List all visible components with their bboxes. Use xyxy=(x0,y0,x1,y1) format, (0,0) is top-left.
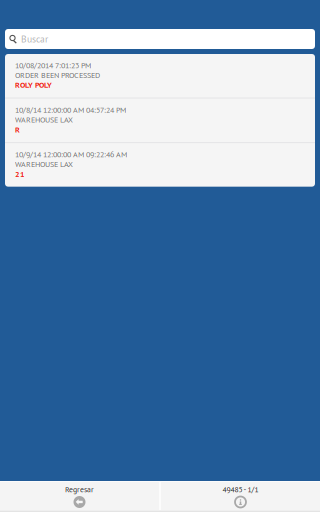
staticText: WAREHOUSE LAX xyxy=(15,114,73,125)
staticText: 49485 - 1/1 xyxy=(222,484,258,494)
button[interactable]: 10/08/2014 7:01:23 PM xyxy=(5,54,315,98)
staticText: 21 xyxy=(15,169,25,179)
staticText: Regresar xyxy=(65,484,94,494)
staticText: 10/8/14 12:00:00 AM 04:57:24 PM xyxy=(15,105,126,115)
staticText: R xyxy=(15,124,20,135)
staticText: WAREHOUSE LAX xyxy=(15,159,73,169)
button[interactable]: 10/9/14 12:00:00 AM 09:22:46 AM xyxy=(5,143,315,187)
button[interactable]: Regresar xyxy=(0,481,159,510)
button[interactable]: 49485 - 1/1 xyxy=(161,481,320,510)
button[interactable]: 10/8/14 12:00:00 AM 04:57:24 PM xyxy=(5,99,315,142)
button[interactable]: Buscar xyxy=(5,29,315,49)
staticText: 10/08/2014 7:01:23 PM xyxy=(15,60,91,70)
staticText: 10/9/14 12:00:00 AM 09:22:46 AM xyxy=(15,149,127,159)
staticText: Buscar xyxy=(21,33,48,45)
staticText: ORDER BEEN PROCESSED xyxy=(15,70,100,80)
staticText: ROLY POLY xyxy=(15,80,52,90)
